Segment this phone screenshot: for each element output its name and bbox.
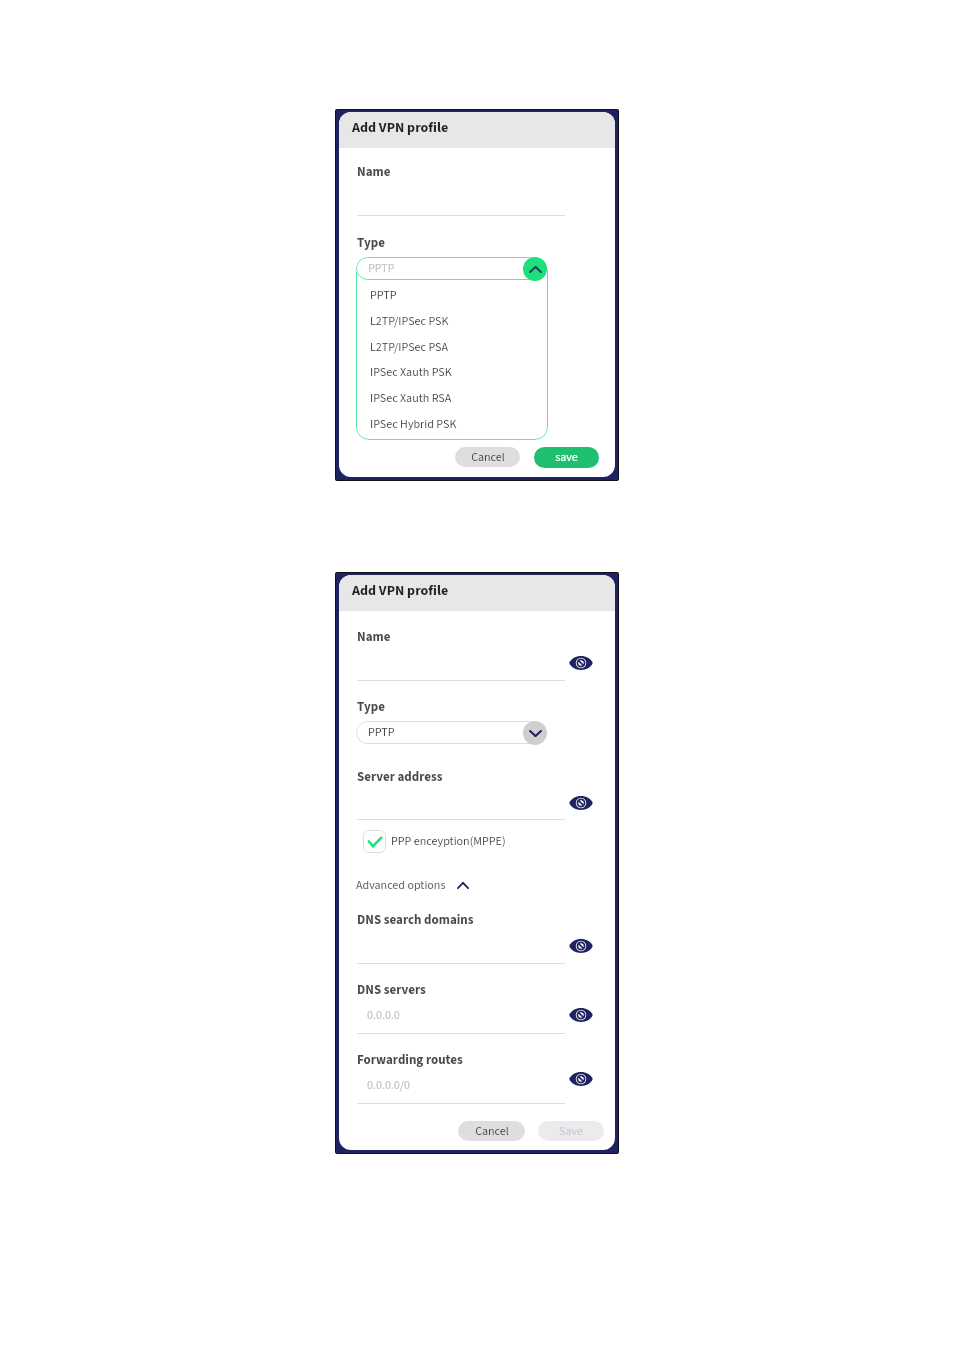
staticText: Forwarding routes <box>357 1051 463 1070</box>
button[interactable]: Cancel <box>458 1121 525 1141</box>
staticText: Server address <box>357 768 443 787</box>
button[interactable]: L2TP/IPSec PSA <box>356 335 548 360</box>
button[interactable]: PPP enceyption(MPPE) <box>363 830 506 853</box>
staticText: Cancel <box>471 449 505 466</box>
button[interactable]: PPTP <box>356 257 541 280</box>
button[interactable]: Toggle visibility <box>568 1069 594 1089</box>
staticText: Add VPN profile <box>352 118 449 138</box>
button[interactable]: Save <box>538 1121 604 1141</box>
button[interactable]: save <box>534 447 599 468</box>
button[interactable]: Expand type list <box>523 721 547 745</box>
button[interactable]: Toggle visibility <box>568 936 594 956</box>
button[interactable]: Toggle visibility <box>568 793 594 813</box>
staticText: PPTP <box>370 287 397 304</box>
staticText: save <box>555 449 578 466</box>
button[interactable]: Toggle visibility <box>568 653 594 673</box>
staticText: DNS search domains <box>357 911 474 930</box>
staticText: Advanced options <box>356 877 446 894</box>
button[interactable]: IPSec Hybrid PSK <box>356 412 548 437</box>
button[interactable]: IPSec Xauth PSK <box>356 360 548 385</box>
staticText: 0.0.0.0/0 <box>367 1077 410 1094</box>
button[interactable]: PPTP <box>356 721 541 744</box>
button[interactable]: PPTP <box>356 283 548 308</box>
staticText: Add VPN profile <box>352 581 449 601</box>
button[interactable]: Cancel <box>455 447 520 467</box>
button[interactable]: IPSec Xauth RSA <box>356 386 548 411</box>
staticText: Type <box>357 234 385 253</box>
staticText: DNS servers <box>357 981 426 1000</box>
staticText: Save <box>559 1123 583 1140</box>
button[interactable]: Toggle visibility <box>568 1005 594 1025</box>
button[interactable]: Collapse type list <box>523 257 547 281</box>
staticText: L2TP/IPSec PSA <box>370 339 448 356</box>
button[interactable]: Advanced options <box>356 877 469 894</box>
button[interactable]: L2TP/IPSec PSK <box>356 309 548 334</box>
staticText: IPSec Xauth PSK <box>370 364 452 381</box>
staticText: PPTP <box>368 724 395 741</box>
staticText: PPTP <box>368 260 395 277</box>
staticText: Name <box>357 163 391 182</box>
staticText: PPP enceyption(MPPE) <box>391 833 506 850</box>
staticText: 0.0.0.0 <box>367 1007 400 1024</box>
staticText: Name <box>357 628 391 647</box>
staticText: Type <box>357 698 385 717</box>
staticText: IPSec Xauth RSA <box>370 390 452 407</box>
staticText: L2TP/IPSec PSK <box>370 313 449 330</box>
staticText: IPSec Hybrid PSK <box>370 416 457 433</box>
staticText: Cancel <box>475 1123 509 1140</box>
